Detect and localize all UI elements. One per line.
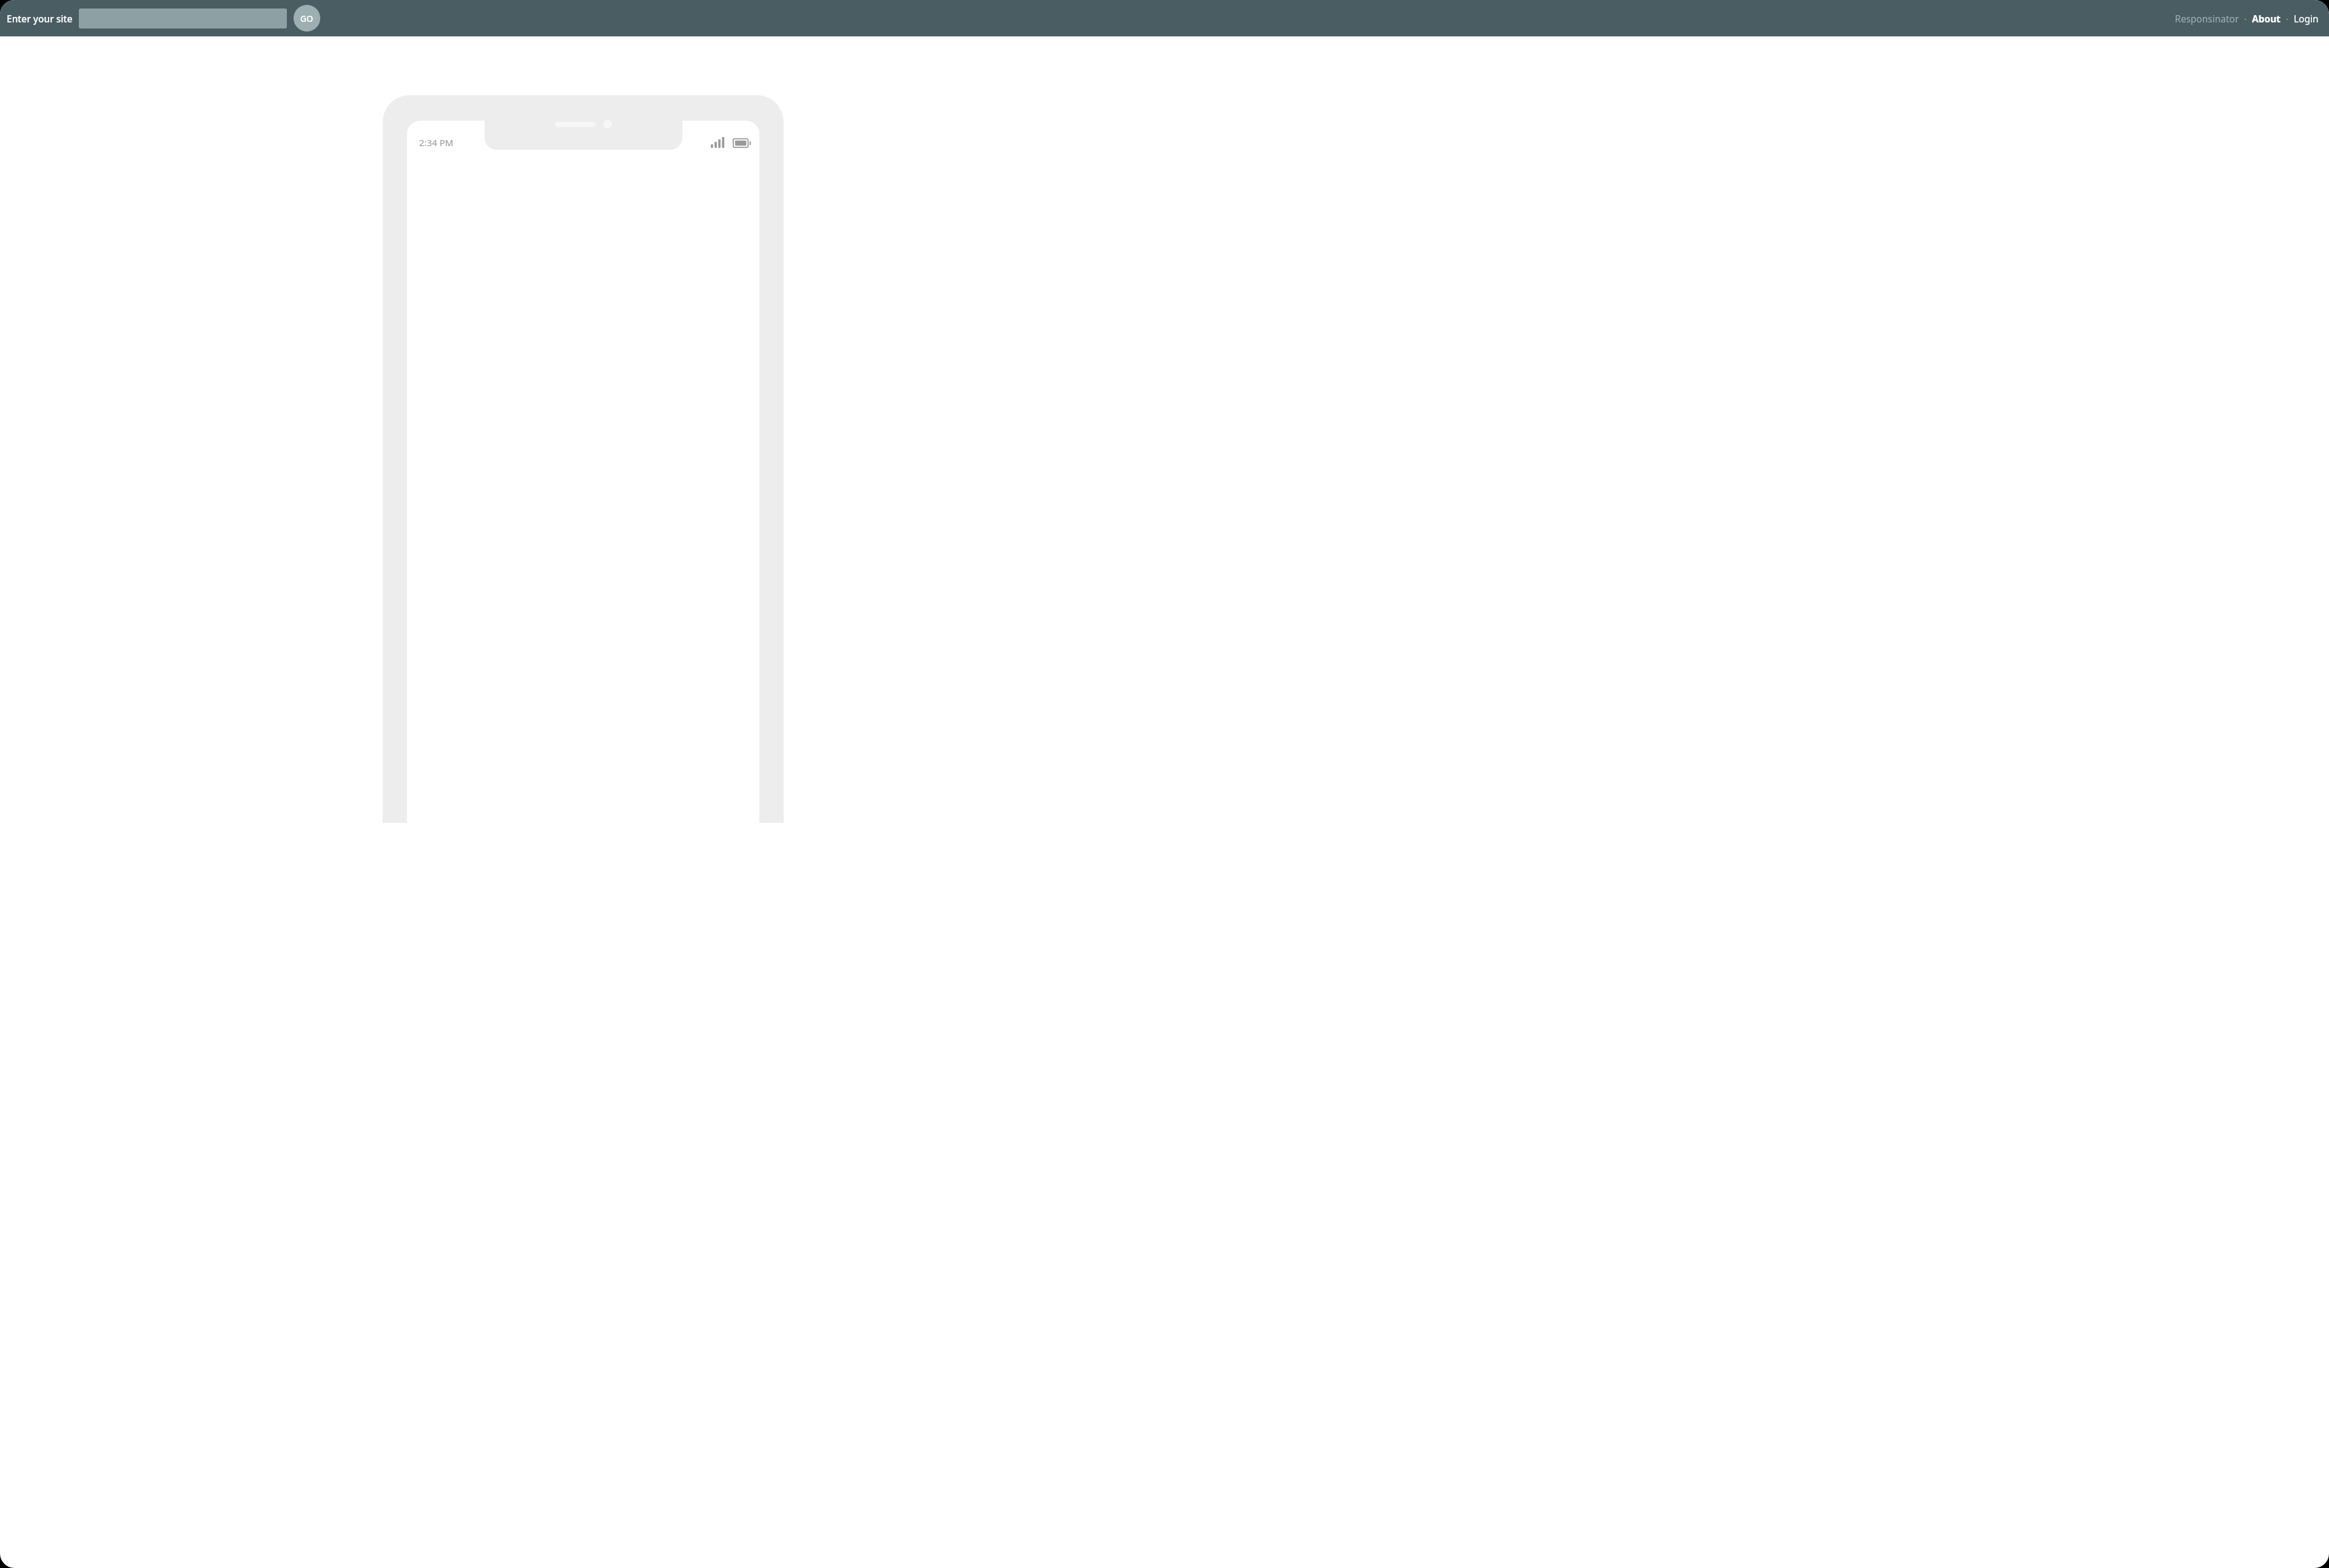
staticText: About — [2252, 12, 2281, 25]
button[interactable]: Site URL input — [79, 8, 287, 28]
button[interactable]: GO — [294, 5, 320, 32]
button[interactable]: About — [2250, 8, 2283, 28]
staticText: · — [2286, 13, 2289, 25]
staticText: Enter your site — [7, 12, 73, 25]
staticText: GO — [300, 13, 314, 24]
staticText: Login — [2294, 12, 2319, 25]
staticText: 2:34 PM — [419, 136, 454, 149]
button[interactable]: Login — [2292, 8, 2321, 28]
staticText: Responsinator — [2175, 12, 2239, 25]
button[interactable]: Responsinator — [2173, 8, 2241, 28]
staticText: · — [2244, 13, 2247, 25]
